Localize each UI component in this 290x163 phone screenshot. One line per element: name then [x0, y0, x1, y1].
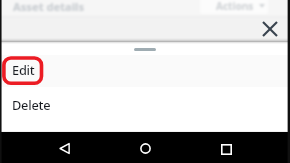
button[interactable]: Back	[49, 133, 79, 163]
button[interactable]: Delete	[0, 87, 290, 119]
button[interactable]: Edit	[0, 55, 290, 87]
button[interactable]: Recent apps	[211, 134, 241, 163]
button[interactable]: Actions	[200, 0, 268, 14]
staticText: Actions	[216, 0, 254, 13]
staticText: Edit	[12, 61, 35, 78]
button[interactable]: Close	[257, 16, 283, 42]
staticText: Asset details	[13, 0, 85, 14]
button[interactable]: Home	[130, 133, 160, 163]
staticText: Delete	[12, 96, 51, 113]
